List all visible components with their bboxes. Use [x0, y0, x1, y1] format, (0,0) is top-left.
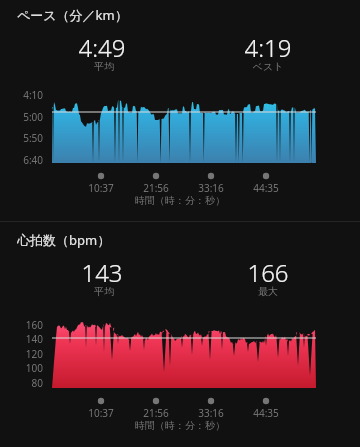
staticText: 心拍数（bpm） [17, 231, 111, 249]
staticText: 4:10 [0, 88, 43, 102]
staticText: 最大 [217, 285, 319, 298]
staticText: 44:35 [236, 181, 296, 195]
staticText: 160 [0, 318, 43, 332]
staticText: 143 [51, 256, 153, 289]
staticText: 平均 [53, 60, 155, 73]
staticText: 10:37 [71, 406, 131, 420]
staticText: 10:37 [71, 181, 131, 195]
staticText: ペース（分／km） [17, 6, 128, 24]
staticText: 166 [217, 256, 319, 289]
staticText: 33:16 [181, 406, 241, 420]
staticText: 33:16 [181, 181, 241, 195]
staticText: 5:00 [0, 110, 43, 124]
staticText: 時間（時：分：秒） [80, 419, 280, 432]
staticText: 21:56 [126, 181, 186, 195]
staticText: 4:49 [51, 31, 153, 64]
staticText: 21:56 [126, 406, 186, 420]
staticText: 120 [0, 347, 43, 361]
staticText: ベスト [217, 60, 319, 73]
staticText: 5:50 [0, 131, 43, 145]
staticText: 時間（時：分：秒） [80, 194, 280, 207]
staticText: 100 [0, 361, 43, 375]
staticText: 4:19 [217, 31, 319, 64]
staticText: 44:35 [236, 406, 296, 420]
staticText: 6:40 [0, 153, 43, 167]
staticText: 140 [0, 332, 43, 346]
staticText: 平均 [53, 285, 155, 298]
staticText: 80 [0, 376, 43, 390]
